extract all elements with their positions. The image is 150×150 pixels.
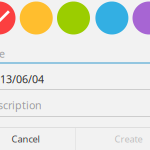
button[interactable]: Create [76, 128, 150, 150]
button[interactable]: Cancel [0, 128, 75, 150]
staticText: Cancel [11, 133, 39, 145]
staticText: 2013/06/04 [0, 72, 44, 86]
staticText: Title [0, 46, 5, 61]
staticText: Description [0, 98, 42, 112]
staticText: Create [114, 133, 142, 145]
